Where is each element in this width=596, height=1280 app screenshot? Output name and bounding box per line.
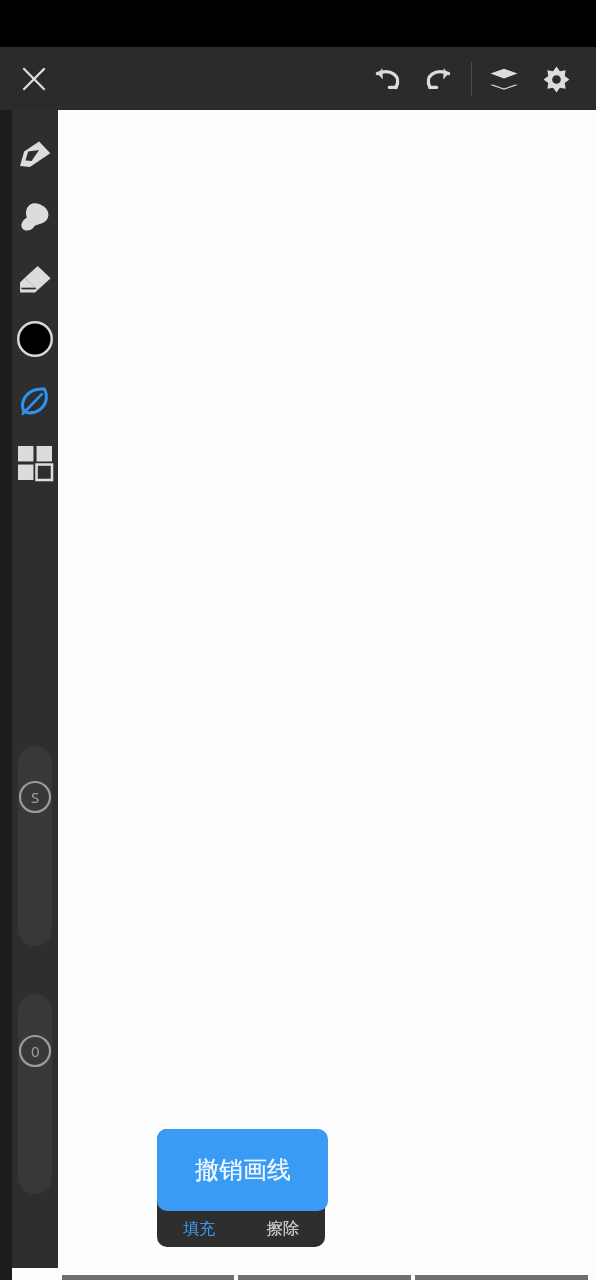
button[interactable]: Color bbox=[12, 316, 58, 362]
button[interactable]: Layers bbox=[478, 53, 530, 105]
staticText: 擦除 bbox=[267, 1219, 299, 1239]
button[interactable]: 填充 bbox=[157, 1211, 241, 1247]
button[interactable]: Pen tool bbox=[12, 132, 58, 178]
button[interactable]: Close bbox=[10, 55, 58, 103]
button[interactable]: Brush shape bbox=[12, 378, 58, 424]
staticText: 撤销画线 bbox=[195, 1155, 291, 1185]
button[interactable]: Eraser bbox=[12, 256, 58, 302]
button[interactable]: Slider 0 bbox=[18, 994, 52, 1194]
button[interactable]: Slider S bbox=[18, 746, 52, 946]
button[interactable]: 撤销画线 bbox=[157, 1129, 328, 1211]
staticText: 填充 bbox=[183, 1219, 215, 1239]
button[interactable]: Palette bbox=[12, 440, 58, 486]
button[interactable]: Undo bbox=[361, 53, 413, 105]
staticText: S bbox=[31, 787, 40, 807]
staticText: 0 bbox=[31, 1041, 40, 1061]
button[interactable]: Smudge tool bbox=[12, 194, 58, 240]
button[interactable]: Redo bbox=[413, 53, 465, 105]
button[interactable]: Settings bbox=[530, 53, 582, 105]
button[interactable]: 擦除 bbox=[241, 1211, 325, 1247]
